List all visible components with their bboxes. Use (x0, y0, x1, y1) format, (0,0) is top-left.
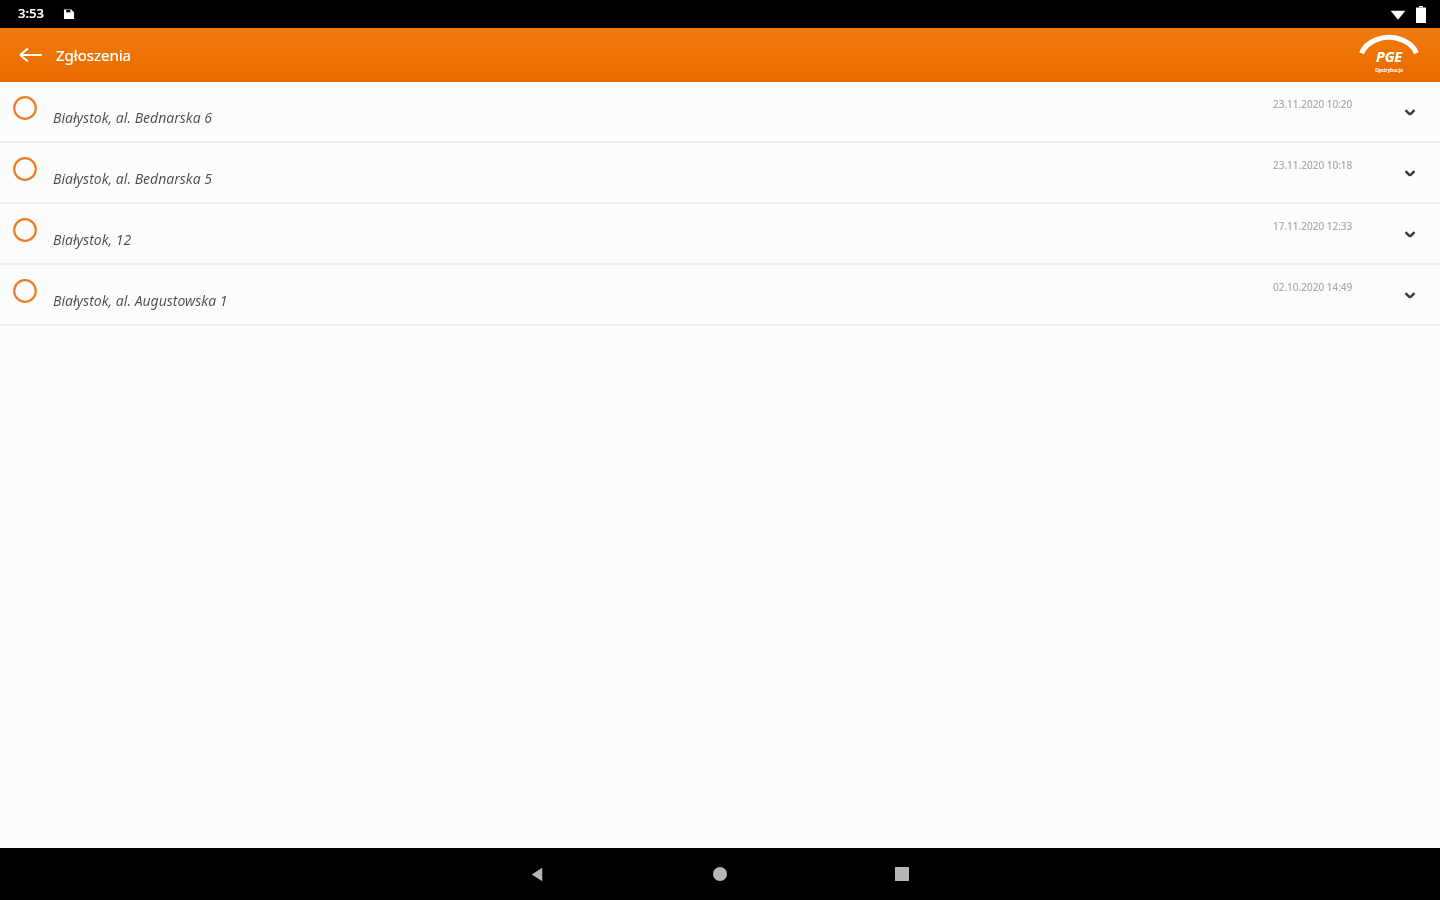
button[interactable]: PGE logo (1350, 33, 1428, 77)
staticText: Białystok, al. Bednarska 5 (53, 169, 213, 188)
staticText: 23.11.2020 10:18 (1273, 158, 1353, 172)
button[interactable]: Expand (1392, 94, 1428, 130)
button[interactable]: Expand (1392, 155, 1428, 191)
button[interactable]: Back (16, 40, 46, 70)
button[interactable]: Białystok, al. Bednarska 6 (0, 82, 1440, 143)
staticText: PGE (1376, 47, 1402, 66)
staticText: Dystrybucja (1350, 67, 1428, 74)
staticText: Białystok, al. Bednarska 6 (53, 108, 213, 127)
staticText: 3:53 (18, 4, 44, 22)
button[interactable]: Expand (1392, 277, 1428, 313)
button[interactable]: Back (507, 848, 567, 900)
button[interactable]: Recent apps (872, 848, 932, 900)
staticText: Białystok, 12 (53, 230, 132, 249)
staticText: 17.11.2020 12:33 (1273, 219, 1353, 233)
button[interactable]: Białystok, al. Augustowska 1 (0, 265, 1440, 326)
button[interactable]: Expand (1392, 216, 1428, 252)
staticText: Białystok, al. Augustowska 1 (53, 291, 228, 310)
button[interactable]: Home (690, 848, 750, 900)
button[interactable]: Białystok, 12 (0, 204, 1440, 265)
staticText: 23.11.2020 10:20 (1273, 97, 1353, 111)
staticText: Zgłoszenia (56, 45, 132, 65)
button[interactable]: Białystok, al. Bednarska 5 (0, 143, 1440, 204)
staticText: 02.10.2020 14:49 (1273, 280, 1353, 294)
